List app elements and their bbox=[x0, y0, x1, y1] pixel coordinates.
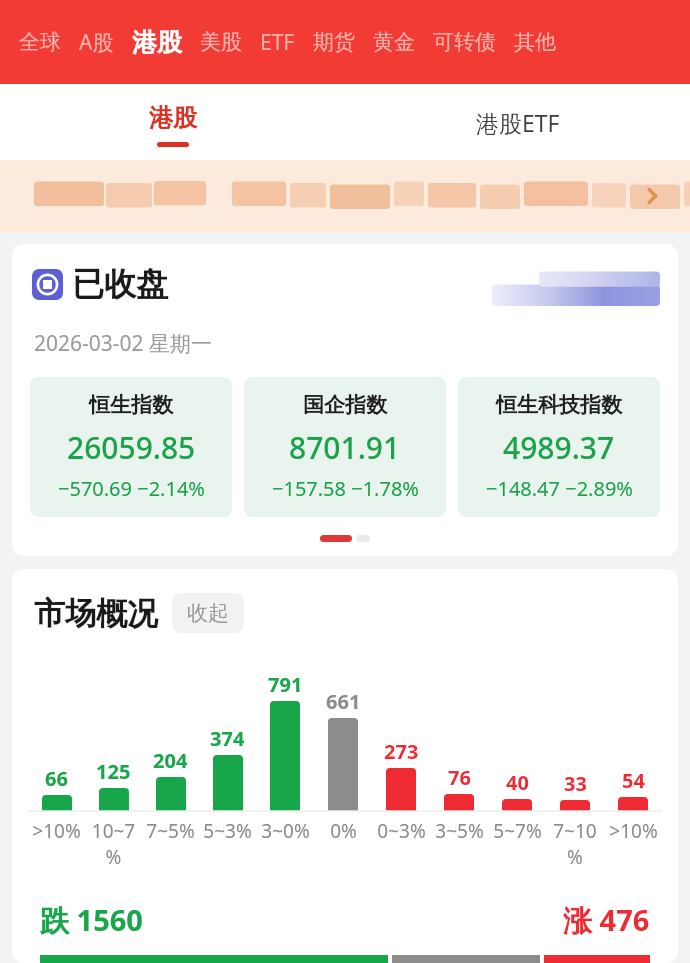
staticText: 已收盘 bbox=[72, 264, 168, 304]
button[interactable]: 港股ETF bbox=[345, 84, 690, 160]
staticText: >10% bbox=[609, 818, 658, 844]
staticText: 10~7% bbox=[85, 818, 142, 870]
staticText: 3~0% bbox=[261, 818, 310, 844]
staticText: 273 bbox=[384, 738, 419, 765]
staticText: 374 bbox=[210, 725, 245, 752]
button[interactable]: A股 bbox=[70, 20, 123, 65]
staticText: 涨 476 bbox=[563, 900, 650, 940]
button[interactable]: 港股 bbox=[123, 19, 191, 66]
staticText: 市场概况 bbox=[34, 594, 158, 633]
staticText: 期货 bbox=[313, 29, 355, 55]
staticText: 26059.85 bbox=[67, 427, 196, 468]
staticText: 76 bbox=[448, 764, 471, 791]
staticText: 125 bbox=[96, 758, 131, 785]
staticText: 2026-03-02 星期一 bbox=[34, 329, 213, 358]
button[interactable]: 恒生指数 bbox=[30, 377, 232, 517]
staticText: −570.69 −2.14% bbox=[58, 475, 205, 502]
staticText: 54 bbox=[622, 767, 645, 794]
staticText: 恒生科技指数 bbox=[496, 392, 622, 418]
staticText: 国企指数 bbox=[303, 392, 387, 418]
staticText: 港股 bbox=[149, 103, 197, 133]
staticText: 791 bbox=[268, 671, 303, 698]
staticText: 4989.37 bbox=[503, 427, 615, 468]
button[interactable]: 期货 bbox=[304, 21, 364, 63]
staticText: 5~7% bbox=[493, 818, 542, 844]
button[interactable]: ETF bbox=[251, 20, 304, 65]
staticText: −148.47 −2.89% bbox=[486, 475, 633, 502]
staticText: 收起 bbox=[187, 600, 229, 626]
button[interactable]: 查看更多 bbox=[0, 160, 690, 232]
staticText: 0% bbox=[330, 818, 357, 844]
staticText: 美股 bbox=[200, 29, 242, 55]
staticText: 8701.91 bbox=[289, 427, 401, 468]
button[interactable]: 全球 bbox=[10, 21, 70, 63]
staticText: 66 bbox=[45, 765, 68, 792]
staticText: >10% bbox=[32, 818, 81, 844]
staticText: 5~3% bbox=[203, 818, 252, 844]
staticText: 跌 1560 bbox=[40, 900, 143, 940]
staticText: 33 bbox=[564, 770, 587, 797]
other: 查看更多 bbox=[640, 184, 664, 208]
staticText: 7~10% bbox=[546, 818, 604, 870]
staticText: 661 bbox=[326, 688, 361, 715]
staticText: A股 bbox=[79, 28, 114, 57]
staticText: 7~5% bbox=[146, 818, 195, 844]
staticText: 40 bbox=[506, 769, 529, 796]
button[interactable]: 其他 bbox=[505, 21, 565, 63]
button[interactable]: 恒生科技指数 bbox=[458, 377, 660, 517]
button[interactable]: 收起 bbox=[172, 593, 244, 633]
staticText: 恒生指数 bbox=[89, 392, 173, 418]
staticText: 0~3% bbox=[377, 818, 426, 844]
staticText: 黄金 bbox=[373, 29, 415, 55]
staticText: 3~5% bbox=[435, 818, 484, 844]
staticText: ETF bbox=[260, 28, 295, 57]
button[interactable]: 美股 bbox=[191, 21, 251, 63]
button[interactable]: 可转债 bbox=[424, 21, 505, 63]
staticText: 其他 bbox=[514, 29, 556, 55]
button[interactable]: 国企指数 bbox=[244, 377, 446, 517]
staticText: 港股ETF bbox=[476, 107, 560, 138]
staticText: 204 bbox=[153, 747, 188, 774]
staticText: 港股 bbox=[132, 27, 182, 58]
button[interactable]: 黄金 bbox=[364, 21, 424, 63]
staticText: −157.58 −1.78% bbox=[272, 475, 419, 502]
button[interactable]: 港股 bbox=[0, 84, 345, 160]
staticText: 可转债 bbox=[433, 29, 496, 55]
staticText: 全球 bbox=[19, 29, 61, 55]
